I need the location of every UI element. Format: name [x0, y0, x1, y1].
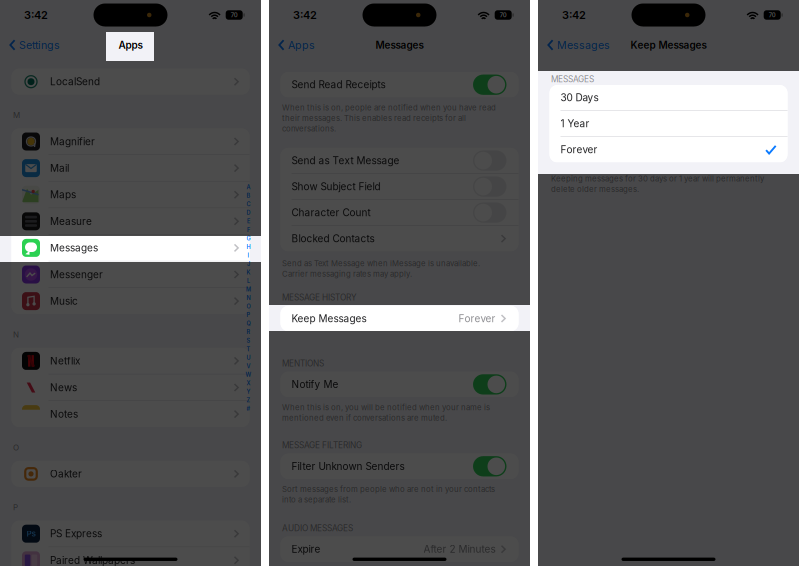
staticText: I	[247, 252, 249, 259]
staticText: E	[247, 218, 250, 225]
staticText: Character Count	[291, 207, 370, 219]
staticText: Notes	[50, 408, 78, 420]
button[interactable]: Blocked Contacts	[280, 226, 518, 251]
staticText: Notify Me	[291, 378, 338, 390]
staticText: Messages	[50, 242, 98, 254]
staticText: Q	[246, 320, 250, 327]
staticText: Carrier messaging rates may apply.	[282, 269, 412, 279]
button[interactable]: Filter Unknown Senders	[280, 454, 518, 479]
staticText: After 2 Minutes	[423, 543, 495, 555]
staticText: Music	[50, 295, 78, 307]
staticText: 3:42	[24, 8, 48, 22]
button[interactable]: LocalSend	[11, 69, 249, 95]
staticText: 70	[231, 11, 238, 19]
staticText: F	[247, 226, 250, 233]
staticText: Apps	[118, 39, 142, 51]
staticText: Messages	[375, 39, 423, 51]
staticText: delete older messages.	[551, 184, 639, 194]
staticText: AUDIO MESSAGES	[282, 523, 353, 533]
staticText: O	[13, 443, 19, 452]
staticText: LocalSend	[50, 76, 100, 88]
staticText: Expire	[291, 543, 320, 555]
staticText: their messages. This enables read receip…	[282, 113, 466, 123]
button[interactable]: Messages	[11, 235, 249, 261]
staticText: P	[13, 502, 18, 512]
staticText: M	[13, 110, 20, 120]
button[interactable]: Mail	[11, 155, 249, 181]
button[interactable]: 30 Days	[549, 85, 787, 110]
staticText: MESSAGE FILTERING	[282, 440, 362, 450]
button[interactable]: Paired Wallpapers	[11, 547, 249, 566]
staticText: 30 Days	[560, 92, 598, 104]
staticText: Oakter	[50, 468, 82, 480]
staticText: 70	[500, 11, 507, 19]
staticText: Send Read Receipts	[291, 79, 385, 91]
staticText: D	[246, 209, 250, 216]
staticText: Sort messages from people who are not in…	[282, 485, 495, 494]
staticText: V	[246, 363, 250, 370]
button[interactable]: News	[11, 374, 249, 400]
staticText: conversations.	[282, 124, 336, 133]
staticText: K	[246, 269, 250, 276]
staticText: P	[246, 312, 250, 318]
button[interactable]: Messenger	[11, 261, 249, 287]
button[interactable]: Forever	[549, 137, 787, 162]
button[interactable]: 1 Year	[549, 111, 787, 136]
staticText: Measure	[50, 215, 92, 227]
staticText: Send as Text Message when iMessage is un…	[282, 259, 480, 268]
button[interactable]: Apps	[269, 32, 315, 57]
staticText: C	[246, 201, 250, 208]
staticText: MESSAGE HISTORY	[282, 292, 357, 302]
button[interactable]: Oakter	[11, 461, 249, 487]
staticText: X	[246, 380, 250, 387]
staticText: Magnifier	[50, 135, 95, 148]
staticText: G	[246, 235, 250, 242]
staticText: Paired Wallpapers	[50, 554, 135, 566]
staticText: 70	[769, 11, 776, 19]
staticText: Y	[246, 388, 250, 395]
staticText: Forever	[560, 144, 597, 156]
staticText: W	[245, 371, 251, 378]
staticText: H	[246, 243, 250, 250]
staticText: R	[246, 329, 250, 335]
staticText: O	[246, 303, 250, 310]
staticText: When this is on, people are notified whe…	[282, 103, 496, 112]
staticText: N	[13, 330, 19, 339]
button[interactable]: Send Read Receipts	[280, 72, 518, 97]
staticText: M	[246, 286, 251, 293]
button[interactable]: Measure	[11, 208, 249, 234]
button[interactable]: Maps	[11, 182, 249, 208]
staticText: Messages	[557, 38, 610, 51]
button[interactable]: Messages	[538, 32, 610, 57]
staticText: Keep Messages	[630, 39, 706, 51]
button[interactable]: Send as Text Message	[280, 148, 518, 173]
staticText: PS Express	[50, 528, 102, 540]
staticText: Apps	[288, 38, 315, 51]
button[interactable]: Ps	[11, 521, 249, 547]
button[interactable]: Netflix	[11, 348, 249, 374]
staticText: 3:42	[562, 8, 586, 22]
button[interactable]: Settings	[0, 32, 60, 57]
staticText: Filter Unknown Senders	[291, 460, 404, 472]
staticText: S	[246, 337, 250, 344]
button[interactable]: Character Count	[280, 200, 518, 225]
staticText: When this is on, you will be notified wh…	[282, 403, 490, 412]
staticText: Ps	[26, 529, 35, 539]
staticText: Z	[246, 397, 250, 404]
staticText: MESSAGES	[551, 74, 594, 84]
button[interactable]: Notify Me	[280, 372, 518, 397]
staticText: Blocked Contacts	[291, 233, 374, 245]
button[interactable]: Keep Messages	[280, 306, 518, 331]
staticText: A	[246, 184, 250, 191]
staticText: Keep Messages	[291, 312, 366, 325]
staticText: Forever	[458, 312, 495, 325]
button[interactable]: Expire	[280, 536, 518, 562]
button[interactable]: Notes	[11, 401, 249, 427]
button[interactable]: Show Subject Field	[280, 174, 518, 199]
button[interactable]: Music	[11, 288, 249, 314]
staticText: J	[247, 260, 250, 267]
button[interactable]: Magnifier	[11, 128, 249, 154]
staticText: MENTIONS	[282, 358, 324, 368]
staticText: mentioned even if conversations are mute…	[282, 413, 447, 423]
staticText: Show Subject Field	[291, 181, 380, 193]
